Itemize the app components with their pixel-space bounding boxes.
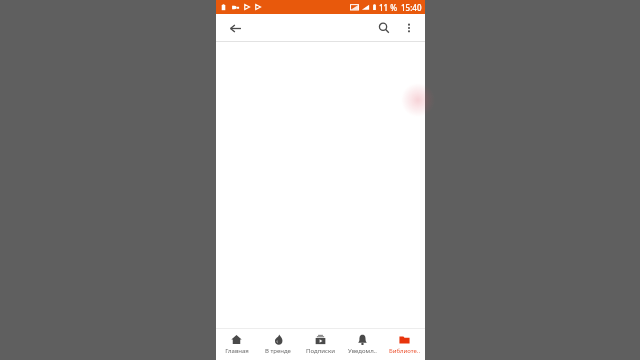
button[interactable]: More options	[398, 17, 420, 39]
button[interactable]: Главная	[216, 329, 257, 360]
button[interactable]: Уведомл..	[341, 329, 383, 360]
staticText: В тренде	[265, 347, 291, 355]
staticText: Главная	[225, 347, 249, 355]
button[interactable]: Подписки	[299, 329, 341, 360]
button[interactable]: В тренде	[257, 329, 299, 360]
button[interactable]: Search	[373, 17, 395, 39]
staticText: 11 %	[379, 2, 398, 13]
button[interactable]: Библиоте..	[383, 329, 425, 360]
staticText: Уведомл..	[348, 347, 377, 355]
button[interactable]: Back	[224, 17, 246, 39]
staticText: Подписки	[306, 347, 335, 355]
staticText: Библиоте..	[389, 347, 420, 355]
staticText: 15:40	[401, 2, 422, 13]
